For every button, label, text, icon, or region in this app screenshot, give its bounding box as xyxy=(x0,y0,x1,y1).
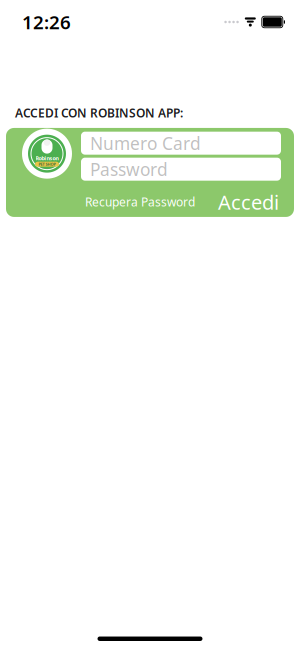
staticText: ACCEDI CON ROBINSON APP: xyxy=(15,105,183,121)
staticText: Accedi xyxy=(218,189,279,215)
staticText: Robinson xyxy=(35,155,58,162)
staticText: PET SHOP xyxy=(38,161,55,167)
staticText: 12:26 xyxy=(22,10,71,34)
staticText: Password xyxy=(90,158,168,181)
button[interactable]: Recupera Password xyxy=(85,191,195,213)
staticText: Numero Card xyxy=(90,132,201,155)
button[interactable]: Accedi xyxy=(218,188,279,216)
staticText: Recupera Password xyxy=(85,194,195,210)
